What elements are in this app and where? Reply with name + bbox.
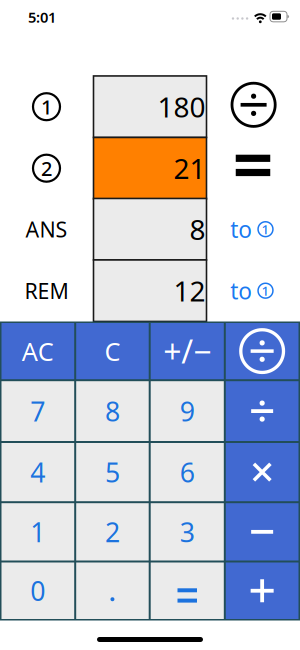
button[interactable] <box>226 562 298 619</box>
button[interactable] <box>76 562 149 619</box>
staticText: 0 <box>30 573 45 608</box>
button[interactable]: 7 <box>1 381 74 441</box>
staticText: 9 <box>180 393 195 429</box>
staticText: +/− <box>163 330 211 372</box>
button[interactable]: AC <box>1 323 74 379</box>
staticText: 5:01 <box>28 7 56 27</box>
staticText: 1 <box>261 220 269 238</box>
staticText: ANS <box>25 215 67 243</box>
button[interactable]: 8 <box>76 381 149 441</box>
button[interactable]: 3 <box>151 503 224 560</box>
staticText: 3 <box>180 514 195 549</box>
button[interactable]: 5 <box>76 443 149 501</box>
staticText: to <box>230 214 252 244</box>
button[interactable]: 9 <box>151 381 224 441</box>
staticText: to <box>230 276 252 306</box>
button[interactable]: 6 <box>151 443 224 501</box>
staticText: 21 <box>173 150 205 187</box>
button[interactable]: to <box>230 276 274 306</box>
staticText: 8 <box>105 393 120 429</box>
button[interactable] <box>226 381 298 441</box>
staticText: 2 <box>41 155 52 181</box>
button[interactable]: +/− <box>151 323 224 379</box>
button[interactable]: 1 <box>1 503 74 560</box>
staticText: 1 <box>41 93 52 120</box>
button[interactable]: to <box>230 214 274 244</box>
staticText: 180 <box>157 88 205 125</box>
button[interactable]: 2 <box>76 503 149 560</box>
button[interactable]: 8 <box>93 198 206 260</box>
button[interactable] <box>226 323 298 379</box>
staticText: C <box>104 334 120 368</box>
button[interactable] <box>226 443 298 501</box>
button[interactable]: 21 <box>93 137 206 199</box>
staticText: 1 <box>261 282 269 299</box>
staticText: 6 <box>180 454 195 490</box>
button[interactable] <box>226 503 298 560</box>
staticText: 12 <box>173 272 205 309</box>
staticText: 8 <box>189 211 205 248</box>
staticText: 5 <box>105 454 120 490</box>
button[interactable]: 4 <box>1 443 74 501</box>
button[interactable] <box>231 82 277 128</box>
button[interactable]: 12 <box>93 260 206 321</box>
button[interactable] <box>151 562 224 619</box>
staticText: 7 <box>30 393 45 429</box>
staticText: AC <box>22 334 54 368</box>
button[interactable]: C <box>76 323 149 379</box>
staticText: 4 <box>30 454 45 490</box>
staticText: 2 <box>105 514 120 549</box>
button[interactable]: 180 <box>93 76 206 137</box>
staticText: REM <box>24 276 68 305</box>
button[interactable]: 0 <box>1 562 74 619</box>
staticText: 1 <box>30 514 45 549</box>
